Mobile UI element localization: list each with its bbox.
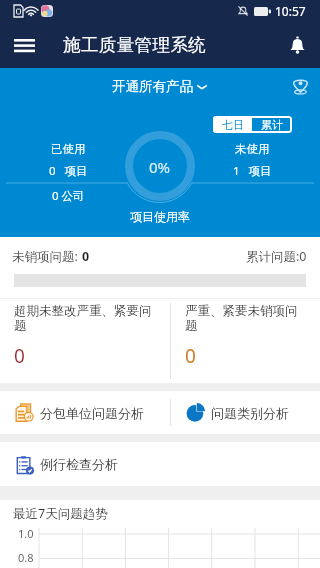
button[interactable]: 严重、紧要未销项问题 (171, 299, 320, 383)
button[interactable]: 分包单位问题分析 (0, 391, 170, 434)
staticText: 超期未整改严重、紧要问题 (14, 303, 158, 334)
button[interactable]: Notifications (278, 26, 316, 64)
staticText: 0 项目 (49, 163, 88, 179)
staticText: 已使用 (51, 142, 86, 156)
staticText: 1 项目 (233, 163, 272, 179)
button[interactable]: Menu (4, 25, 44, 65)
staticText: 未使用 (235, 142, 270, 156)
button[interactable]: Location (285, 71, 315, 101)
staticText: 累计问题:0 (246, 248, 307, 265)
button[interactable]: 累计 (252, 116, 292, 133)
staticText: 问题类别分析 (211, 405, 289, 421)
staticText: 0 (14, 343, 25, 369)
button[interactable]: 问题类别分析 (171, 391, 320, 434)
staticText: 0% (149, 157, 171, 177)
staticText: 1.0 (18, 526, 34, 541)
staticText: 未销项问题: (12, 248, 82, 265)
button[interactable]: 例行检查分析 (0, 442, 170, 486)
staticText: 最近7天问题趋势 (13, 505, 108, 522)
button[interactable]: 七日 (213, 116, 252, 133)
button[interactable]: 开通所有产品 (106, 74, 214, 99)
staticText: 例行检查分析 (40, 456, 118, 472)
staticText: 累计 (261, 118, 283, 132)
staticText: 严重、紧要未销项问题 (185, 303, 308, 334)
staticText: 0 (82, 248, 90, 265)
button[interactable]: 超期未整改严重、紧要问题 (0, 299, 170, 383)
staticText: 开通所有产品 (112, 78, 193, 95)
staticText: 0 (185, 343, 196, 369)
staticText: 0 公司 (52, 188, 85, 204)
staticText: 分包单位问题分析 (40, 405, 144, 421)
staticText: 七日 (222, 118, 244, 132)
staticText: 10:57 (275, 3, 306, 19)
staticText: 项目使用率 (130, 209, 190, 224)
staticText: 施工质量管理系统 (63, 34, 207, 56)
staticText: 0.8 (18, 550, 34, 565)
